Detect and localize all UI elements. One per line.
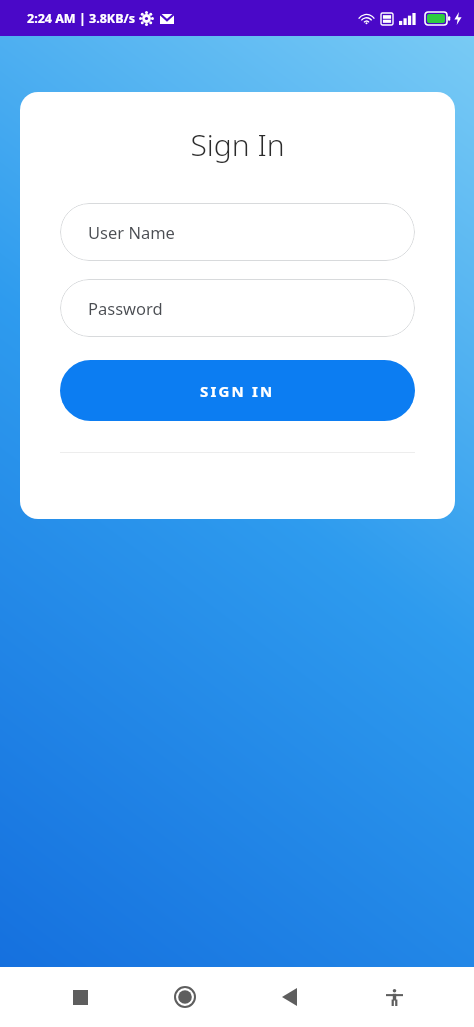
staticText: SIGN IN: [200, 381, 275, 401]
staticText: 2:24 AM | 3.8KB/s: [27, 10, 135, 27]
staticText: Password: [88, 297, 163, 319]
button[interactable]: SIGN IN: [60, 360, 415, 421]
staticText: User Name: [88, 221, 175, 243]
button[interactable]: Recent apps: [56, 973, 104, 1021]
staticText: Sign In: [190, 124, 285, 165]
button[interactable]: Home: [161, 973, 209, 1021]
button[interactable]: Accessibility: [370, 973, 418, 1021]
button[interactable]: Back: [265, 973, 313, 1021]
button[interactable]: Password: [60, 279, 415, 337]
button[interactable]: User Name: [60, 203, 415, 261]
